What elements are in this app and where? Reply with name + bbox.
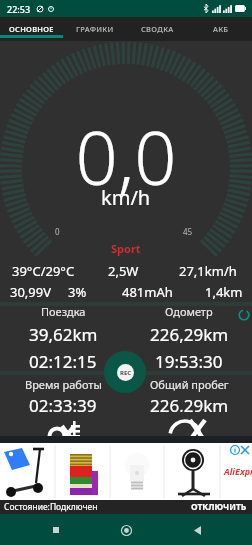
staticText: АКБ xyxy=(213,24,229,34)
button[interactable]: Общий пробег xyxy=(126,375,252,394)
button[interactable]: Recents xyxy=(41,515,71,545)
button[interactable]: 2,5W xyxy=(78,260,168,281)
staticText: 1,4km xyxy=(205,283,243,301)
staticText: 226,29km xyxy=(150,394,229,412)
staticText: Sport xyxy=(111,241,141,256)
staticText: 45 xyxy=(183,226,193,237)
button[interactable]: Время работы xyxy=(0,375,126,394)
button[interactable]: ГРАФИКИ xyxy=(63,17,126,41)
button[interactable]: ОСНОВНОЕ xyxy=(0,17,63,41)
staticText: Одометр xyxy=(165,304,213,319)
staticText: Поездка xyxy=(41,304,86,319)
staticText: Общий пробег xyxy=(150,377,229,392)
button[interactable]: 1,4km xyxy=(179,281,252,302)
staticText: 3% xyxy=(68,283,87,301)
staticText: 2,5W xyxy=(108,262,139,280)
staticText: 02:12:15 xyxy=(29,350,97,373)
staticText: Время работы xyxy=(25,377,102,392)
other: Reset xyxy=(238,309,250,321)
staticText: ГРАФИКИ xyxy=(76,24,114,34)
staticText: 0,0 xyxy=(75,106,177,196)
staticText: 22:53 xyxy=(7,3,31,15)
button[interactable]: 39°C/29°C xyxy=(0,260,88,281)
staticText: 02:33:39 xyxy=(29,394,97,412)
staticText: 39,62km xyxy=(29,323,98,346)
button[interactable]: 27,1km/h xyxy=(163,260,252,281)
button[interactable]: Record xyxy=(104,351,146,393)
staticText: 30,99V xyxy=(10,283,52,301)
button[interactable]: AliExpress xyxy=(0,443,252,500)
staticText: km/h xyxy=(101,184,151,211)
button[interactable]: Back xyxy=(182,515,212,545)
button[interactable]: 3% xyxy=(32,281,122,302)
staticText: 19:53:30 xyxy=(155,350,223,373)
staticText: Состояние:Подключен xyxy=(4,501,98,513)
button[interactable]: СВОДКА xyxy=(126,17,189,41)
staticText: СВОДКА xyxy=(141,24,174,34)
staticText: AliExpress xyxy=(224,465,252,477)
button[interactable]: 30,99V xyxy=(0,281,76,302)
staticText: ОТКЛЮЧИТЬ xyxy=(191,501,247,513)
button[interactable]: Одометр xyxy=(126,302,252,321)
staticText: 226,29km xyxy=(150,323,229,346)
staticText: 481mAh xyxy=(122,283,173,301)
button[interactable]: Поездка xyxy=(0,302,126,321)
staticText: ОСНОВНОЕ xyxy=(9,24,54,34)
button[interactable]: АКБ xyxy=(189,17,252,41)
staticText: 0 xyxy=(55,226,60,237)
button[interactable]: ОТКЛЮЧИТЬ xyxy=(186,501,252,513)
staticText: REC xyxy=(120,369,132,377)
staticText: 27,1km/h xyxy=(179,262,237,280)
staticText: 39°C/29°C xyxy=(12,262,75,280)
button[interactable]: 481mAh xyxy=(102,281,192,302)
button[interactable]: Home xyxy=(111,515,141,545)
